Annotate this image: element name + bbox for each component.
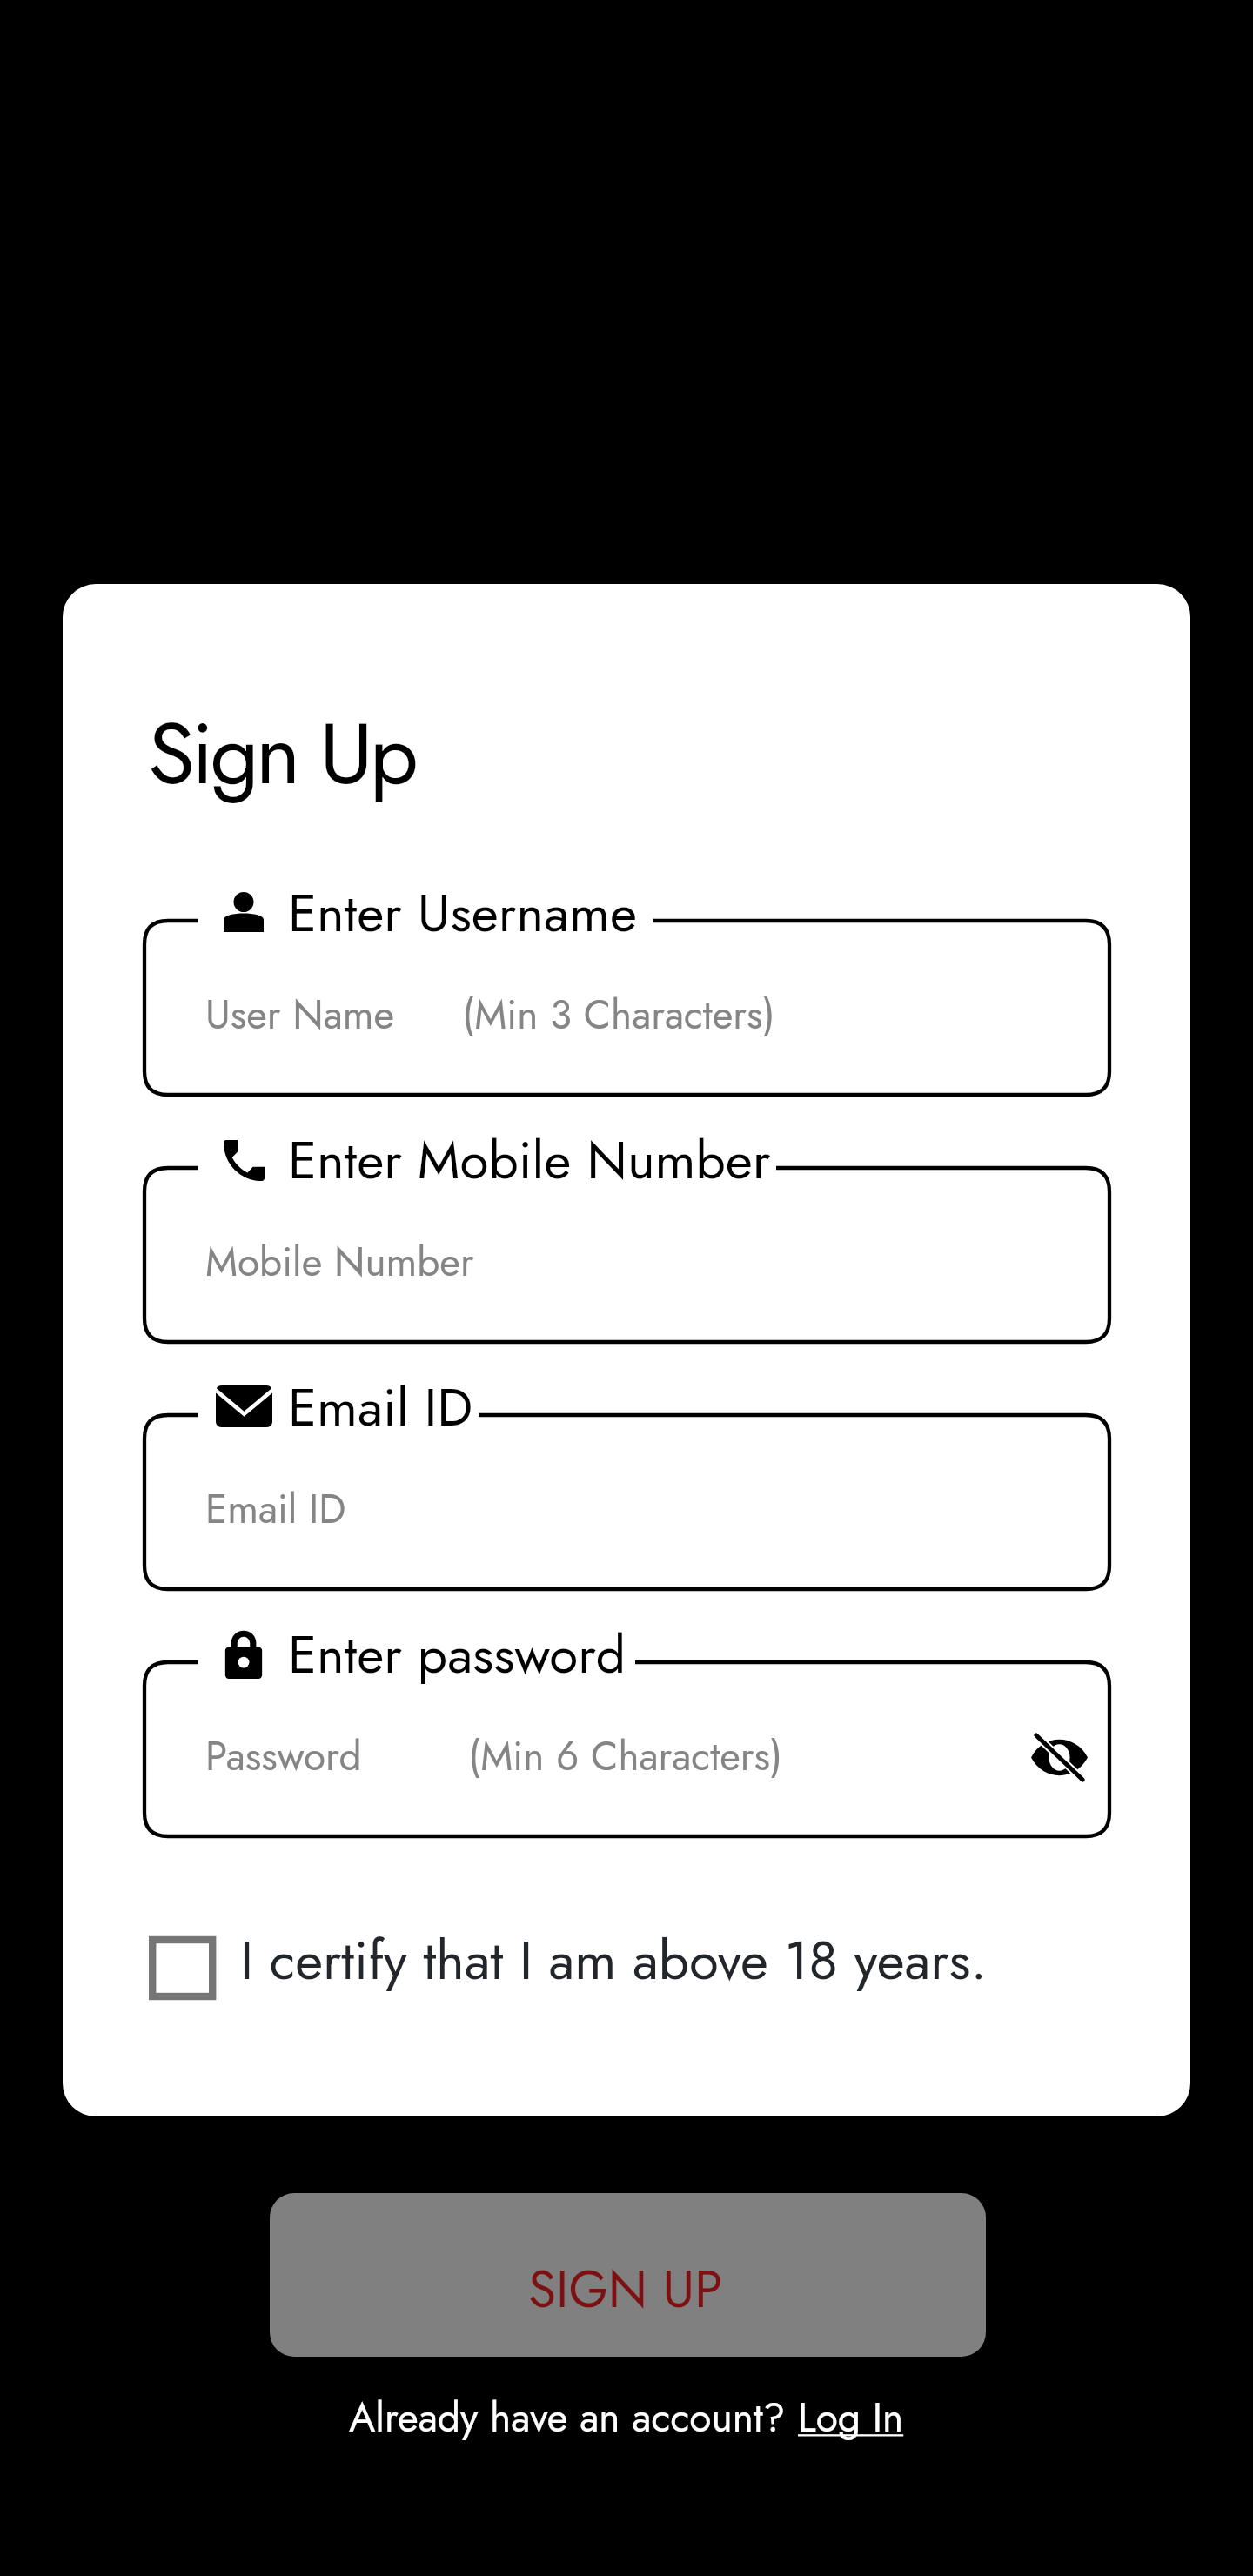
staticText: (Min 6 Characters) (468, 1727, 783, 1785)
button[interactable]: Log In (798, 2389, 904, 2446)
staticText: Email ID (288, 1370, 473, 1446)
staticText: Enter password (288, 1617, 626, 1693)
button[interactable] (145, 1913, 985, 2026)
staticText: SIGN UP (528, 2252, 723, 2326)
staticText: I certify that I am above 18 years. (240, 1922, 987, 1999)
staticText: Already have an account? (349, 2389, 798, 2446)
staticText: Email ID (205, 1480, 346, 1538)
button[interactable] (136, 1159, 1118, 1351)
button[interactable] (136, 1406, 1118, 1598)
staticText: Sign Up (148, 692, 415, 815)
button[interactable] (136, 1654, 1118, 1845)
staticText: Password (205, 1727, 362, 1785)
staticText: Enter Username (288, 875, 637, 951)
button[interactable] (270, 2193, 986, 2357)
staticText: (Min 3 Characters) (462, 986, 775, 1043)
staticText: Mobile Number (205, 1233, 474, 1291)
button[interactable] (136, 912, 1118, 1104)
staticText: Enter Mobile Number (288, 1123, 771, 1198)
staticText: User Name (205, 986, 394, 1043)
button[interactable]: Show password (1031, 1735, 1088, 1780)
